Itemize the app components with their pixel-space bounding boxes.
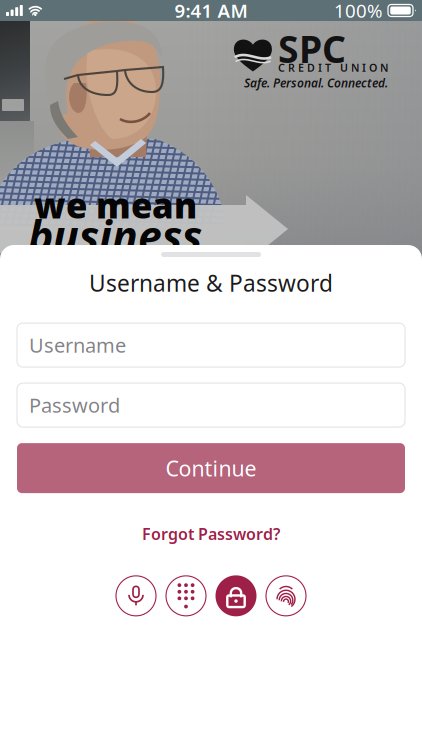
staticText: Safe. Personal. Connected. xyxy=(244,75,388,91)
staticText: 100% xyxy=(334,0,383,23)
staticText: C R E D I T U N I O N xyxy=(278,60,388,75)
button[interactable]: Forgot Password? xyxy=(130,516,292,551)
staticText: Username & Password xyxy=(89,268,333,298)
button[interactable]: PIN keypad login xyxy=(165,575,206,616)
staticText: Username xyxy=(29,332,126,358)
staticText: Forgot Password? xyxy=(142,523,280,544)
staticText: SPC xyxy=(278,24,346,73)
staticText: we mean xyxy=(34,182,197,228)
staticText: Continue xyxy=(165,454,256,482)
staticText: Password xyxy=(29,392,120,418)
button[interactable]: Password login xyxy=(215,575,256,616)
button[interactable]: Continue xyxy=(17,443,405,493)
staticText: 9:41 AM xyxy=(174,0,247,23)
staticText: business xyxy=(28,207,202,264)
button[interactable]: Voice login xyxy=(115,575,156,616)
button[interactable]: Fingerprint login xyxy=(265,575,306,616)
